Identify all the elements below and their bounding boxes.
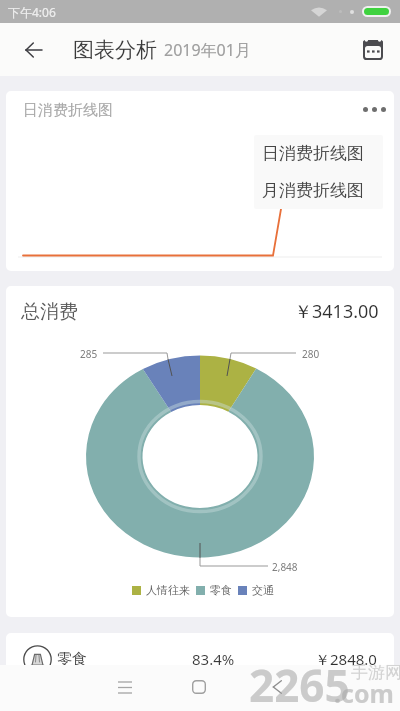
- staticText: 83.4%: [192, 649, 235, 669]
- staticText: 交通: [252, 583, 274, 597]
- button[interactable]: 日消费折线图: [254, 135, 383, 172]
- staticText: 2265: [249, 655, 350, 711]
- staticText: 2,848: [272, 560, 298, 574]
- staticText: 2019年01月: [164, 39, 251, 61]
- staticText: 零食: [57, 650, 87, 669]
- staticText: 下午4:06: [8, 4, 56, 20]
- staticText: 280: [302, 347, 320, 361]
- staticText: 图表分析: [73, 37, 157, 63]
- staticText: 人情往来: [146, 583, 190, 597]
- staticText: 285: [80, 347, 98, 361]
- staticText: ￥2848.0: [315, 649, 377, 669]
- button[interactable]: Back: [14, 30, 54, 70]
- staticText: 总消费: [21, 300, 78, 324]
- staticText: .com: [334, 676, 394, 710]
- staticText: 月消费折线图: [262, 180, 364, 201]
- button[interactable]: 月消费折线图: [254, 172, 383, 209]
- button[interactable]: Menu: [107, 669, 143, 705]
- button[interactable]: Home: [181, 669, 217, 705]
- button[interactable]: 零食: [6, 633, 394, 685]
- staticText: 零食: [210, 583, 232, 597]
- staticText: 日消费折线图: [262, 143, 364, 164]
- button[interactable]: Back: [259, 669, 295, 705]
- staticText: ￥3413.00: [294, 299, 379, 324]
- staticText: 手游网: [351, 662, 400, 683]
- staticText: 日消费折线图: [23, 101, 113, 120]
- button[interactable]: Select month: [353, 30, 393, 70]
- button[interactable]: More options: [357, 92, 391, 126]
